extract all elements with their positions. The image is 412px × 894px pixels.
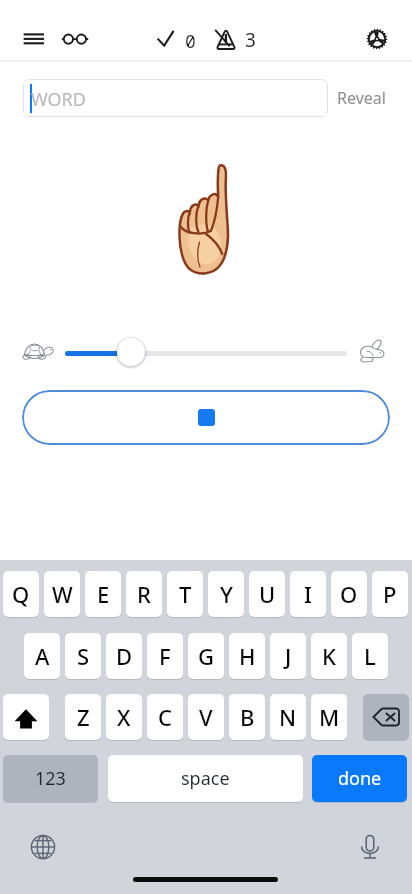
staticText: 123 <box>35 766 66 791</box>
button[interactable]: Reveal <box>337 87 386 109</box>
button[interactable]: P <box>372 571 408 617</box>
button[interactable]: G <box>188 633 224 679</box>
button[interactable]: J <box>270 633 306 679</box>
staticText: space <box>181 766 230 791</box>
staticText: E <box>97 579 110 609</box>
button[interactable]: F <box>147 633 183 679</box>
button[interactable]: W <box>44 571 80 617</box>
button[interactable]: Speed <box>113 335 149 371</box>
staticText: A <box>35 641 50 671</box>
staticText: B <box>240 702 255 732</box>
button[interactable]: Y <box>208 571 244 617</box>
button[interactable]: Correct count <box>155 24 197 56</box>
button[interactable]: Reveal hints <box>56 24 90 58</box>
button[interactable]: Metronome <box>214 24 260 56</box>
staticText: D <box>116 641 133 671</box>
button[interactable]: I <box>290 571 326 617</box>
button[interactable]: T <box>167 571 203 617</box>
staticText: X <box>117 702 131 732</box>
button[interactable]: Q <box>3 571 39 617</box>
button[interactable]: Settings <box>362 24 392 54</box>
button[interactable]: C <box>147 694 183 740</box>
staticText: J <box>285 641 292 671</box>
button[interactable]: Menu <box>14 24 44 54</box>
button[interactable]: V <box>188 694 224 740</box>
button[interactable]: Shift <box>3 694 49 740</box>
staticText: 0 <box>185 29 196 54</box>
staticText: H <box>239 641 256 671</box>
staticText: F <box>159 641 171 671</box>
button[interactable]: done <box>312 755 407 802</box>
button[interactable]: X <box>106 694 142 740</box>
staticText: Q <box>12 579 30 609</box>
button[interactable]: Stop <box>22 390 390 445</box>
staticText: WORD <box>31 87 86 112</box>
staticText: 3 <box>245 27 256 53</box>
staticText: M <box>319 702 340 732</box>
button[interactable]: R <box>126 571 162 617</box>
button[interactable]: Change keyboard <box>29 833 57 861</box>
staticText: P <box>383 579 397 609</box>
button[interactable]: E <box>85 571 121 617</box>
staticText: Reveal <box>337 87 386 109</box>
button[interactable]: L <box>352 633 388 679</box>
staticText: T <box>179 579 192 609</box>
staticText: I <box>304 579 312 609</box>
staticText: C <box>158 702 172 732</box>
staticText: O <box>340 579 358 609</box>
button[interactable]: Faster <box>358 338 392 364</box>
staticText: S <box>77 641 90 671</box>
staticText: K <box>322 641 336 671</box>
button[interactable]: B <box>229 694 265 740</box>
button[interactable]: U <box>249 571 285 617</box>
button[interactable]: M <box>311 694 347 740</box>
staticText: Y <box>220 579 233 609</box>
button[interactable]: A <box>24 633 60 679</box>
staticText: U <box>259 579 276 609</box>
button[interactable]: Voice input <box>356 833 384 861</box>
button[interactable]: D <box>106 633 142 679</box>
staticText: Z <box>77 702 90 732</box>
staticText: R <box>137 579 151 609</box>
button[interactable]: 123 <box>3 755 98 802</box>
button[interactable]: Backspace <box>363 694 409 740</box>
staticText: done <box>338 766 382 791</box>
button[interactable]: K <box>311 633 347 679</box>
button[interactable]: Slower <box>22 340 56 364</box>
button[interactable]: N <box>270 694 306 740</box>
staticText: W <box>52 579 73 609</box>
button[interactable]: space <box>108 755 303 802</box>
button[interactable]: H <box>229 633 265 679</box>
staticText: L <box>364 641 376 671</box>
button[interactable]: S <box>65 633 101 679</box>
staticText: N <box>279 702 297 732</box>
button[interactable]: Z <box>65 694 101 740</box>
button[interactable]: O <box>331 571 367 617</box>
staticText: G <box>198 641 214 671</box>
staticText: V <box>199 702 213 732</box>
button[interactable]: WORD <box>23 79 328 117</box>
